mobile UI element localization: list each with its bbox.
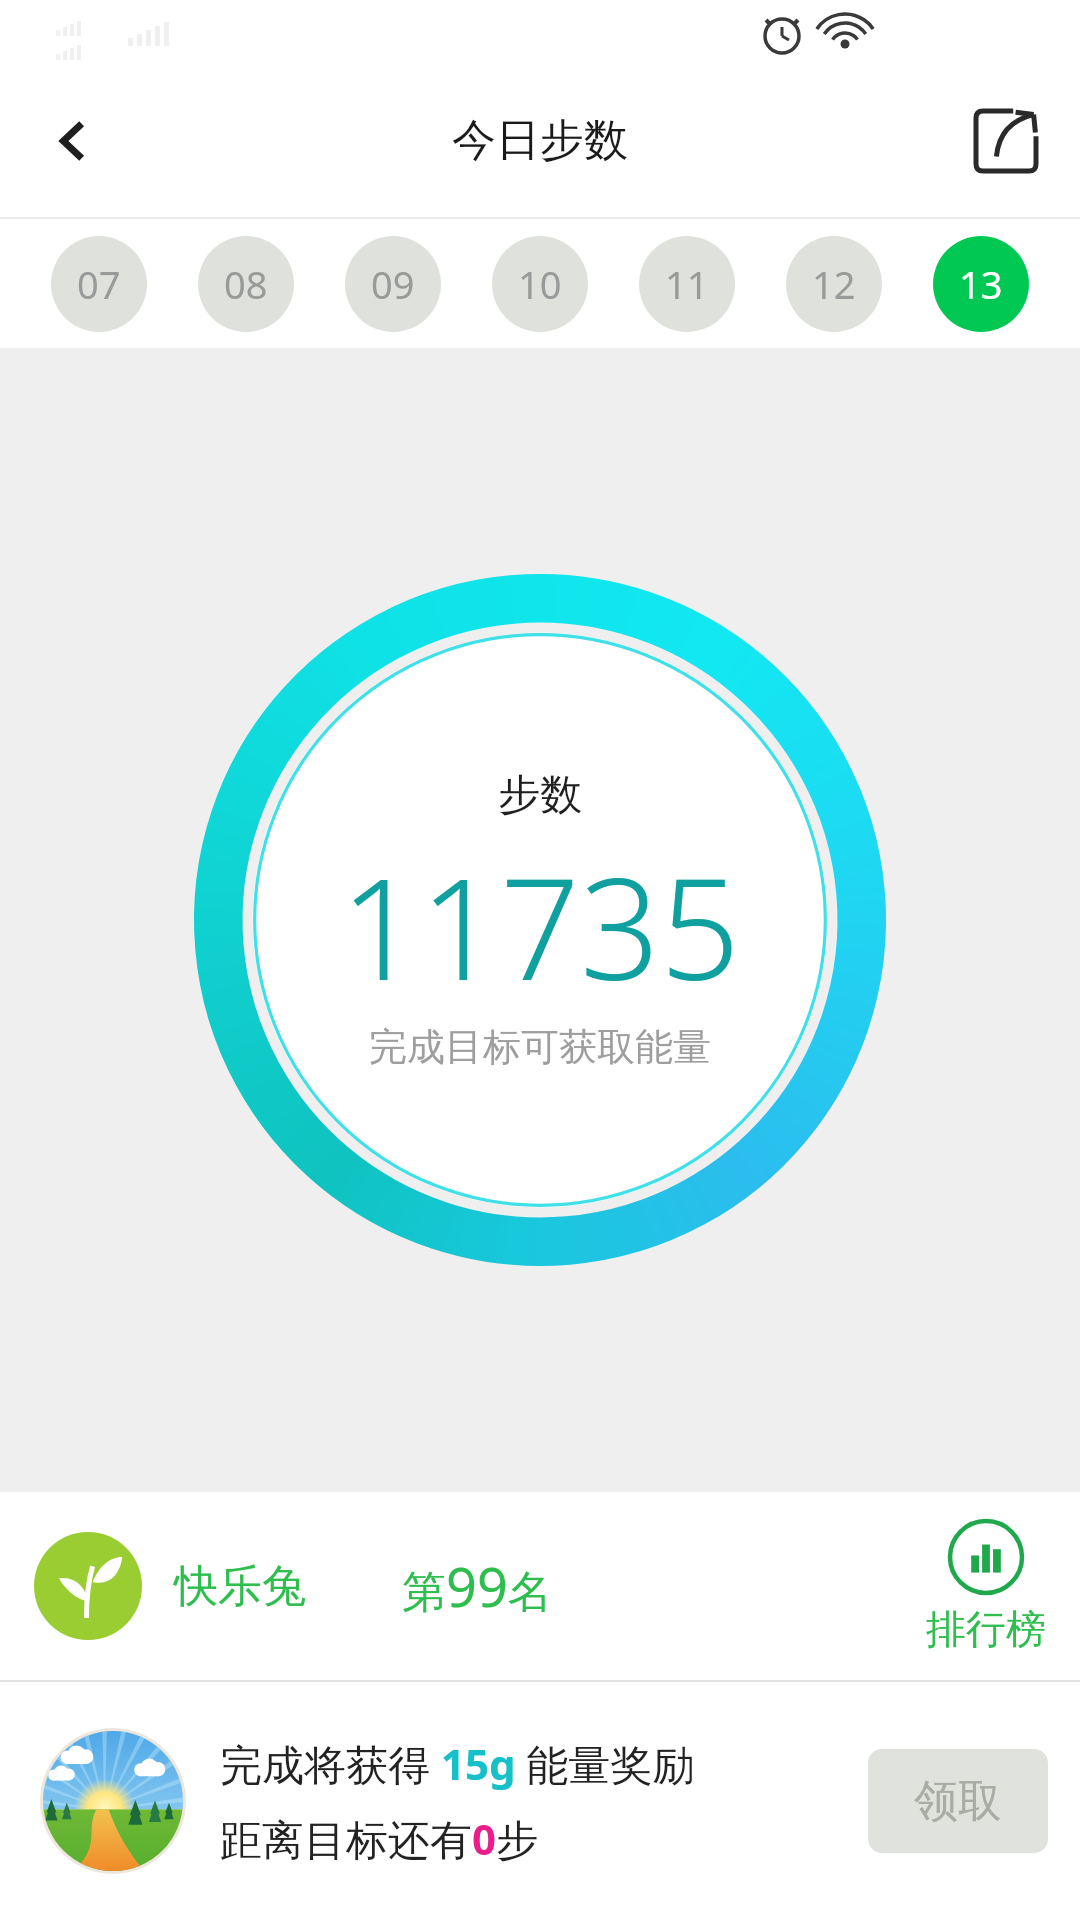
staticText: 11 bbox=[665, 258, 709, 310]
staticText: 08 bbox=[224, 258, 268, 310]
staticText: 快乐兔 bbox=[174, 1559, 306, 1614]
staticText: 今日步数 bbox=[452, 113, 628, 168]
button[interactable]: 13 bbox=[933, 236, 1029, 332]
button[interactable]: 10 bbox=[492, 236, 588, 332]
button[interactable]: Back bbox=[18, 86, 128, 196]
button[interactable]: 排行榜 bbox=[926, 1518, 1046, 1654]
staticText: 07 bbox=[77, 258, 121, 310]
staticText: 步数 bbox=[498, 769, 582, 822]
staticText: 距离目标还有0步 bbox=[220, 1810, 539, 1867]
button[interactable]: Share bbox=[954, 89, 1058, 193]
staticText: 完成目标可获取能量 bbox=[369, 1023, 711, 1071]
button[interactable]: 11 bbox=[639, 236, 735, 332]
staticText: 第99名 bbox=[402, 1549, 552, 1623]
button[interactable]: 领取 bbox=[868, 1749, 1048, 1853]
staticText: 10 bbox=[518, 258, 562, 310]
button[interactable]: 12 bbox=[786, 236, 882, 332]
button[interactable]: 08 bbox=[198, 236, 294, 332]
staticText: 完成将获得 15g 能量奖励 bbox=[220, 1735, 695, 1792]
staticText: 11735 bbox=[340, 830, 740, 1021]
staticText: 13 bbox=[959, 258, 1003, 310]
staticText: 排行榜 bbox=[926, 1604, 1046, 1654]
button[interactable]: 07 bbox=[51, 236, 147, 332]
staticText: 09 bbox=[371, 258, 415, 310]
staticText: 领取 bbox=[914, 1774, 1002, 1829]
staticText: 12 bbox=[812, 258, 856, 310]
button[interactable]: 快乐兔 bbox=[0, 1492, 1080, 1680]
button[interactable]: 09 bbox=[345, 236, 441, 332]
